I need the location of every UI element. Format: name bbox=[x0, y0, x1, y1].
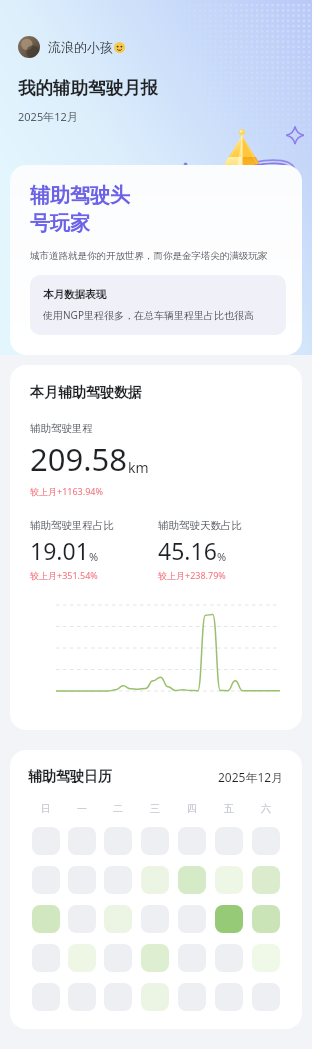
button[interactable] bbox=[215, 944, 243, 972]
staticText: 较上月+351.54% bbox=[30, 569, 98, 581]
staticText: 2025年12月 bbox=[218, 769, 284, 785]
staticText: 209.58 bbox=[30, 438, 127, 480]
button[interactable] bbox=[178, 905, 206, 933]
staticText: 较上月+1163.94% bbox=[30, 485, 103, 497]
button[interactable] bbox=[104, 983, 132, 1011]
button[interactable] bbox=[215, 827, 243, 855]
staticText: 日 bbox=[41, 802, 51, 815]
staticText: 四 bbox=[187, 802, 197, 815]
button[interactable] bbox=[215, 866, 243, 894]
button[interactable] bbox=[252, 944, 280, 972]
button[interactable]: 本月数据表现 bbox=[30, 275, 286, 335]
staticText: 本月辅助驾驶数据 bbox=[30, 384, 142, 402]
button[interactable] bbox=[104, 905, 132, 933]
button[interactable] bbox=[32, 905, 60, 933]
staticText: 45.16 bbox=[158, 535, 217, 566]
button[interactable] bbox=[252, 983, 280, 1011]
button[interactable] bbox=[141, 827, 169, 855]
staticText: 城市道路就是你的开放世界，而你是金字塔尖的满级玩家 bbox=[30, 250, 268, 262]
staticText: % bbox=[89, 549, 99, 564]
staticText: 二 bbox=[113, 802, 123, 815]
staticText: 流浪的小孩 bbox=[48, 39, 113, 55]
staticText: 辅助驾驶天数占比 bbox=[158, 519, 242, 532]
button[interactable] bbox=[104, 866, 132, 894]
button[interactable] bbox=[178, 866, 206, 894]
button[interactable] bbox=[68, 827, 96, 855]
button[interactable] bbox=[141, 905, 169, 933]
button[interactable] bbox=[141, 944, 169, 972]
button[interactable] bbox=[178, 827, 206, 855]
staticText: 辅助驾驶日历 bbox=[28, 768, 112, 786]
button[interactable]: 流浪的小孩 bbox=[18, 36, 125, 58]
staticText: 2025年12月 bbox=[18, 109, 78, 124]
button[interactable] bbox=[215, 983, 243, 1011]
staticText: 三 bbox=[150, 802, 160, 815]
staticText: 辅助驾驶头 bbox=[30, 183, 130, 208]
staticText: 六 bbox=[261, 802, 271, 815]
button[interactable] bbox=[68, 866, 96, 894]
button[interactable] bbox=[252, 905, 280, 933]
button[interactable] bbox=[32, 827, 60, 855]
button[interactable] bbox=[68, 944, 96, 972]
staticText: 我的辅助驾驶月报 bbox=[18, 77, 158, 99]
button[interactable] bbox=[68, 905, 96, 933]
staticText: 辅助驾驶里程 bbox=[30, 422, 93, 435]
button[interactable] bbox=[252, 827, 280, 855]
button[interactable] bbox=[68, 983, 96, 1011]
button[interactable] bbox=[178, 983, 206, 1011]
button[interactable] bbox=[32, 983, 60, 1011]
button[interactable] bbox=[141, 866, 169, 894]
button[interactable] bbox=[215, 905, 243, 933]
button[interactable] bbox=[32, 944, 60, 972]
button[interactable] bbox=[104, 944, 132, 972]
staticText: 辅助驾驶里程占比 bbox=[30, 519, 114, 532]
button[interactable] bbox=[178, 944, 206, 972]
staticText: 五 bbox=[224, 802, 234, 815]
staticText: % bbox=[217, 549, 227, 564]
staticText: 使用NGP里程很多，在总车辆里程里占比也很高 bbox=[43, 308, 254, 322]
staticText: 19.01 bbox=[30, 535, 89, 566]
button[interactable] bbox=[252, 866, 280, 894]
staticText: 本月数据表现 bbox=[43, 288, 106, 301]
staticText: 较上月+238.79% bbox=[158, 569, 226, 581]
button[interactable] bbox=[141, 983, 169, 1011]
button[interactable] bbox=[32, 866, 60, 894]
staticText: 一 bbox=[77, 802, 87, 815]
button[interactable] bbox=[104, 827, 132, 855]
staticText: 号玩家 bbox=[30, 211, 90, 236]
staticText: km bbox=[128, 458, 149, 477]
